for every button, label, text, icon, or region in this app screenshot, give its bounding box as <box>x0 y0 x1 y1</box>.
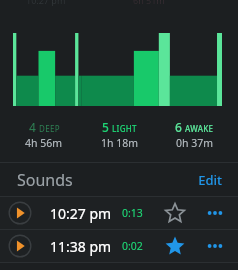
staticText: 0:02 <box>122 239 143 253</box>
button[interactable]: Unmark favourite <box>162 233 188 259</box>
staticText: AWAKE <box>185 123 214 134</box>
staticText: 1h 18m <box>101 136 139 150</box>
button[interactable]: More options <box>202 233 228 259</box>
button[interactable]: Edit <box>196 168 224 192</box>
staticText: 4 <box>29 119 36 135</box>
staticText: 4h 56m <box>25 136 63 150</box>
staticText: 11:38 pm <box>50 237 112 256</box>
button[interactable]: Play recording <box>8 201 32 225</box>
button[interactable]: Mark favourite <box>162 200 188 226</box>
staticText: Sounds <box>17 169 73 191</box>
staticText: 5 <box>102 119 109 135</box>
staticText: LIGHT <box>112 123 137 134</box>
staticText: Edit <box>198 171 222 189</box>
button[interactable]: Play recording <box>8 234 32 258</box>
staticText: 6 <box>175 119 182 135</box>
staticText: 10:27 pm <box>26 0 66 6</box>
button[interactable]: More options <box>202 200 228 226</box>
staticText: 6h 51m <box>133 0 165 6</box>
staticText: DEEP <box>39 123 60 134</box>
button[interactable]: Play recording <box>0 230 238 262</box>
staticText: 0h 37m <box>176 136 214 150</box>
staticText: 10:27 pm <box>50 204 112 223</box>
button[interactable]: Play recording <box>0 197 238 229</box>
staticText: 0:13 <box>122 206 143 220</box>
